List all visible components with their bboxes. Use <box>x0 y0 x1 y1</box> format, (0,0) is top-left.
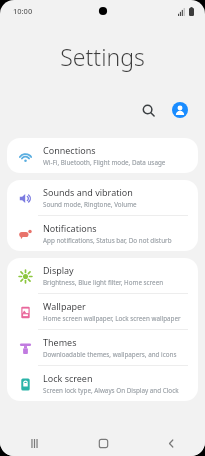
staticText: Sound mode, Ringtone, Volume <box>43 200 137 209</box>
button[interactable]: Lock screen <box>7 366 198 401</box>
staticText: Notifications <box>43 222 97 234</box>
staticText: Home screen wallpaper, Lock screen wallp… <box>43 314 181 323</box>
button[interactable]: Back <box>137 430 205 456</box>
button[interactable]: Sounds and vibration <box>7 180 198 215</box>
staticText: Themes <box>43 336 77 348</box>
button[interactable]: Connections <box>7 138 198 173</box>
staticText: Screen lock type, Always On Display and … <box>43 386 190 395</box>
staticText: Wallpaper <box>43 300 86 312</box>
button[interactable]: Home <box>69 430 137 456</box>
staticText: Downloadable themes, wallpapers, and ico… <box>43 350 177 359</box>
button[interactable]: Account <box>165 95 195 125</box>
button[interactable]: Themes <box>7 330 198 365</box>
button[interactable]: Wallpaper <box>7 294 198 329</box>
staticText: Brightness, Blue light filter, Home scre… <box>43 278 164 287</box>
staticText: Display <box>43 264 74 276</box>
button[interactable]: Search <box>133 95 163 125</box>
staticText: App notifications, Status bar, Do not di… <box>43 236 172 245</box>
staticText: Sounds and vibration <box>43 186 133 198</box>
staticText: 10:00 <box>13 6 33 16</box>
staticText: Wi-Fi, Bluetooth, Flight mode, Data usag… <box>43 158 166 167</box>
staticText: Settings <box>60 41 145 72</box>
staticText: Connections <box>43 144 96 156</box>
button[interactable]: Notifications <box>7 216 198 251</box>
button[interactable]: Display <box>7 258 198 293</box>
button[interactable]: Recents <box>0 430 69 456</box>
staticText: Lock screen <box>43 372 93 384</box>
